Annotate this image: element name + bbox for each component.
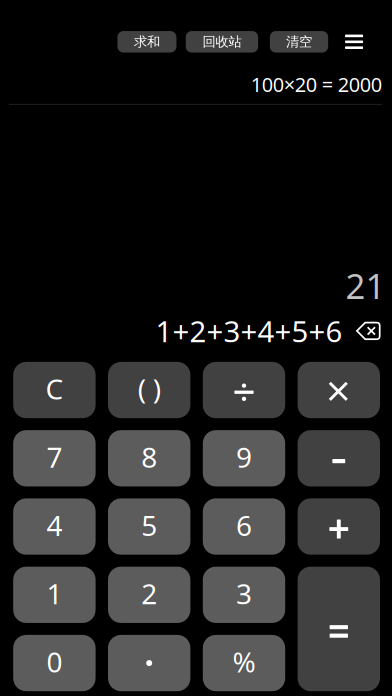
- button[interactable]: 求和: [117, 31, 176, 52]
- button[interactable]: Minus: [298, 430, 380, 486]
- button[interactable]: 2: [108, 567, 190, 623]
- button[interactable]: 1: [13, 567, 96, 623]
- staticText: 100×20 = 2000: [251, 71, 382, 98]
- staticText: 2: [141, 575, 157, 612]
- staticText: 求和: [134, 34, 160, 50]
- button[interactable]: 6: [203, 498, 285, 555]
- button[interactable]: Plus: [298, 498, 380, 555]
- staticText: 4: [46, 506, 62, 544]
- button[interactable]: Menu: [345, 29, 363, 55]
- staticText: 清空: [286, 34, 312, 50]
- staticText: 回收站: [202, 34, 241, 50]
- staticText: 5: [141, 506, 157, 544]
- staticText: 6: [236, 506, 252, 544]
- button[interactable]: Decimal point: [108, 635, 190, 691]
- staticText: 8: [141, 438, 157, 475]
- button[interactable]: Multiply: [298, 362, 380, 418]
- button[interactable]: %: [203, 635, 285, 691]
- button[interactable]: ( ): [108, 362, 190, 418]
- staticText: ( ): [138, 370, 161, 407]
- button[interactable]: Equals: [298, 567, 380, 691]
- button[interactable]: 8: [108, 430, 190, 486]
- staticText: 1+2+3+4+5+6: [156, 311, 343, 350]
- button[interactable]: 9: [203, 430, 285, 486]
- button[interactable]: 回收站: [186, 31, 258, 52]
- button[interactable]: 3: [203, 567, 285, 623]
- button[interactable]: 5: [108, 498, 190, 555]
- staticText: C: [45, 370, 63, 407]
- staticText: 3: [236, 575, 252, 612]
- staticText: 7: [46, 438, 62, 475]
- button[interactable]: Delete: [356, 322, 381, 340]
- staticText: 0: [46, 643, 62, 680]
- staticText: 9: [236, 438, 252, 475]
- button[interactable]: 7: [13, 430, 96, 486]
- button[interactable]: 4: [13, 498, 96, 555]
- button[interactable]: Divide: [203, 362, 285, 418]
- staticText: %: [232, 643, 255, 680]
- staticText: 21: [345, 262, 385, 308]
- staticText: 1: [46, 575, 62, 612]
- button[interactable]: 0: [13, 635, 96, 691]
- button[interactable]: C: [13, 362, 96, 418]
- button[interactable]: 清空: [270, 31, 328, 52]
